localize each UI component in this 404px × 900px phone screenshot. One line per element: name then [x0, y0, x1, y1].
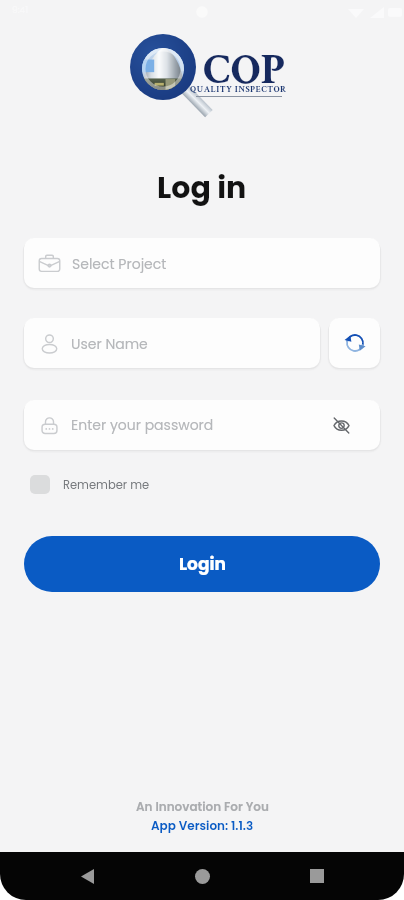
staticText: App Version: 1.1.3	[151, 817, 254, 834]
staticText: QUALITY INSPECTOR	[190, 83, 287, 95]
staticText: Select Project	[72, 254, 167, 274]
button[interactable]: Login	[24, 536, 380, 592]
button[interactable]: Refresh projects	[329, 318, 380, 368]
button[interactable]: Home	[180, 854, 224, 898]
staticText: COP	[203, 41, 286, 98]
button[interactable]: Enter your password	[24, 400, 380, 450]
staticText: Login	[179, 552, 226, 576]
button[interactable]: Remember me	[30, 475, 150, 494]
button[interactable]: Recent apps	[295, 854, 339, 898]
button[interactable]: Select Project	[24, 238, 380, 288]
staticText: Log in	[157, 167, 247, 209]
staticText: User Name	[71, 334, 148, 354]
staticText: Enter your password	[71, 415, 214, 435]
staticText: Remember me	[63, 477, 150, 493]
button[interactable]: Back	[65, 854, 109, 898]
staticText: An Innovation For You	[136, 798, 269, 815]
button[interactable]: User Name	[24, 318, 320, 368]
button[interactable]: Show password	[302, 400, 380, 450]
